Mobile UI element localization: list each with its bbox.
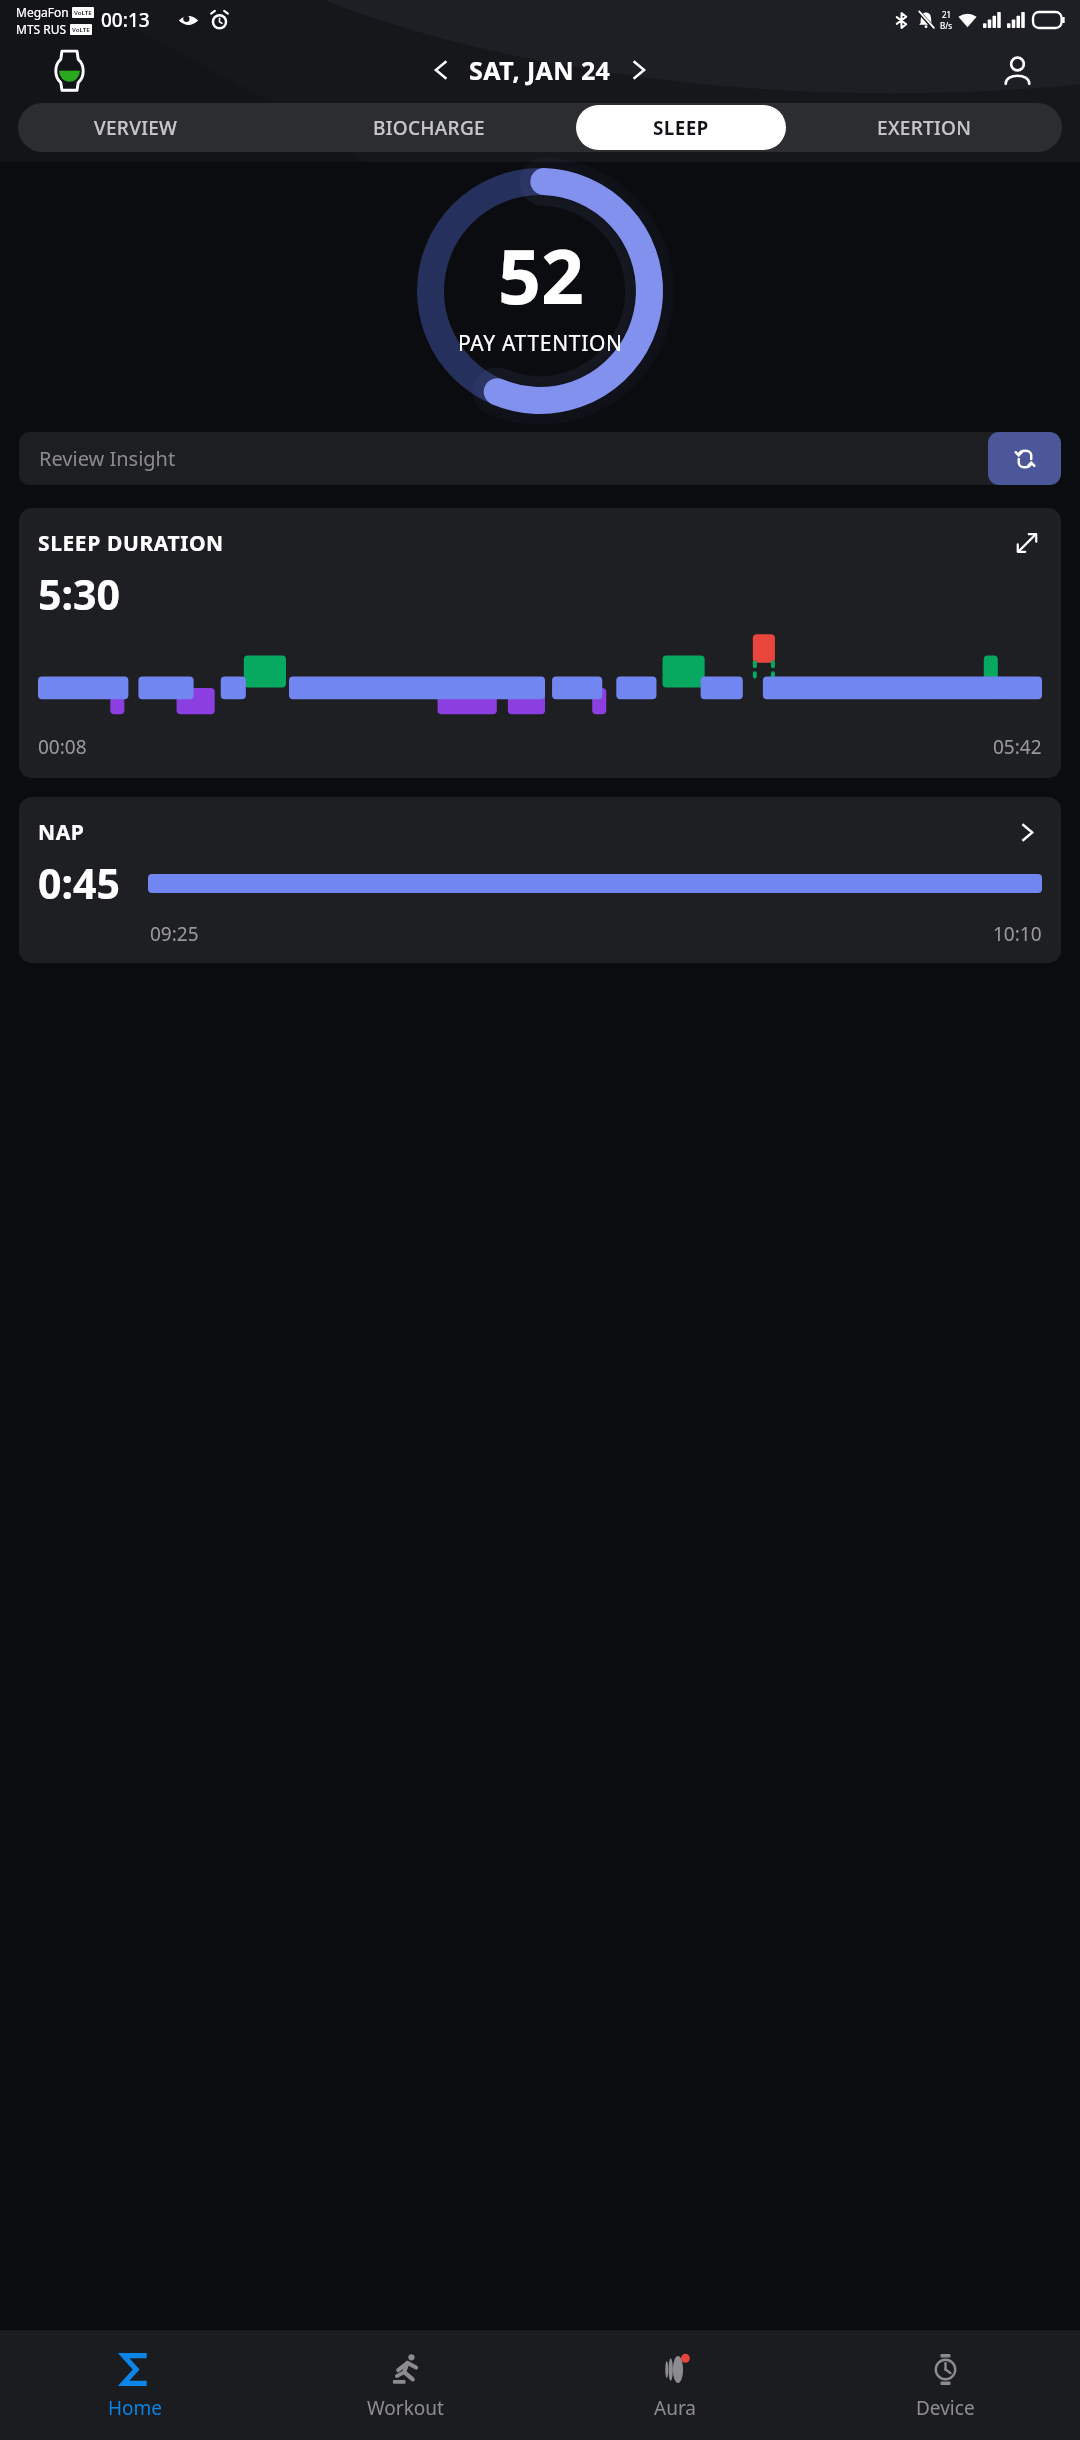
staticText: BIOCHARGE [373, 115, 485, 141]
staticText: 0:45 [38, 855, 120, 911]
staticText: PAY ATTENTION [458, 329, 623, 358]
staticText: SAT, JAN 24 [469, 53, 611, 87]
staticText: 21 [942, 9, 952, 20]
button[interactable]: Aura [540, 2330, 810, 2440]
staticText: MegaFon [16, 4, 69, 20]
button[interactable]: Device [810, 2330, 1080, 2440]
button[interactable]: SLEEP DURATION [19, 508, 1061, 778]
staticText: Home [108, 2395, 163, 2421]
staticText: B/s [940, 20, 953, 31]
button[interactable]: Open nap details [1012, 817, 1042, 847]
button[interactable]: Workout [270, 2330, 540, 2440]
staticText: 05:42 [993, 734, 1042, 760]
button[interactable]: BIOCHARGE [281, 103, 576, 152]
button[interactable]: Home [0, 2330, 270, 2440]
button[interactable]: Refresh insight [988, 432, 1061, 485]
staticText: 10:10 [993, 921, 1042, 947]
staticText: NAP [38, 818, 85, 847]
button[interactable]: Watch battery [44, 45, 94, 95]
staticText: 00:13 [101, 7, 150, 33]
staticText: SLEEP DURATION [38, 529, 224, 558]
button[interactable]: EXERTION [786, 103, 1062, 152]
button[interactable]: Review Insight [19, 432, 1061, 485]
staticText: Aura [654, 2395, 697, 2421]
staticText: SLEEP [653, 115, 709, 141]
staticText: 52 [498, 224, 584, 326]
button[interactable]: Previous day [419, 48, 463, 92]
staticText: 5:30 [38, 566, 120, 622]
staticText: VoLTE [74, 9, 92, 17]
button[interactable]: Profile [994, 47, 1040, 93]
button[interactable]: NAP [19, 797, 1061, 963]
staticText: Workout [367, 2395, 444, 2421]
staticText: Review Insight [39, 445, 176, 472]
staticText: VERVIEW [94, 115, 178, 141]
staticText: 09:25 [150, 921, 199, 947]
staticText: VoLTE [72, 26, 90, 34]
staticText: 00:08 [38, 734, 87, 760]
staticText: Device [916, 2395, 975, 2421]
staticText: EXERTION [877, 115, 972, 141]
button[interactable]: Next day [617, 48, 661, 92]
button[interactable]: Expand [1012, 528, 1042, 558]
button[interactable]: SLEEP [576, 105, 786, 150]
button[interactable]: VERVIEW [18, 103, 281, 152]
staticText: MTS RUS [16, 21, 67, 37]
